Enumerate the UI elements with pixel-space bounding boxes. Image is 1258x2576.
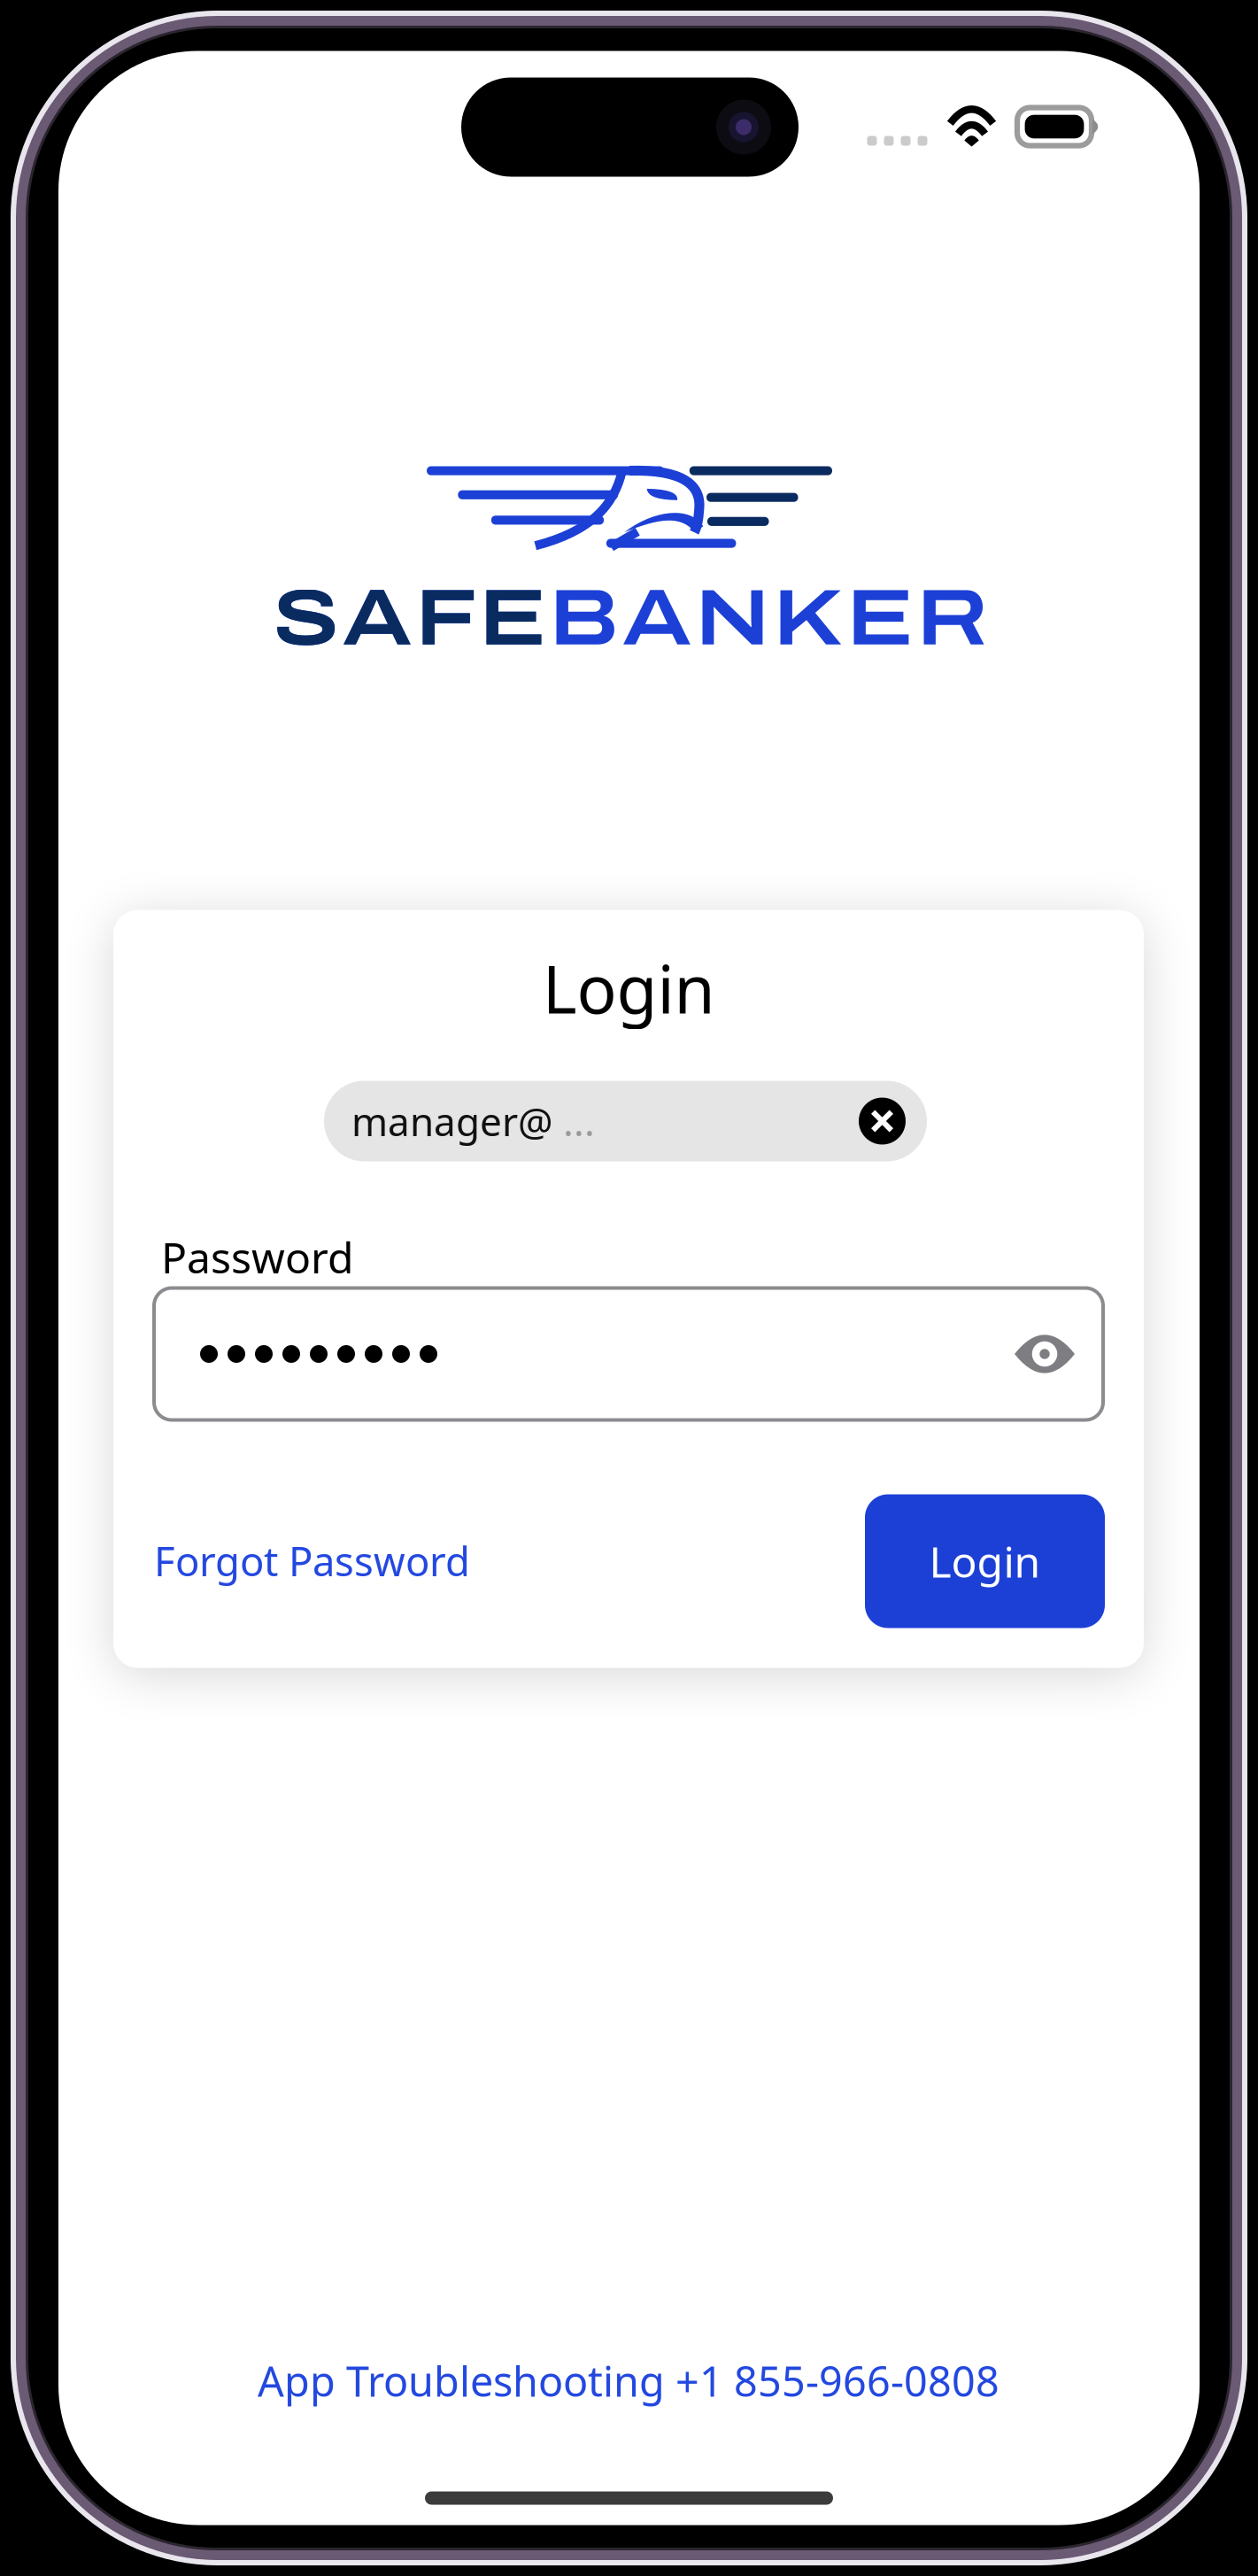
staticText: SAFEBANKER [273,576,988,661]
button[interactable]: Forgot Password [154,1534,473,1587]
button[interactable]: App Troubleshooting +1 855-966-0808 [248,2350,1009,2412]
staticText: Forgot Password [154,1534,470,1587]
staticText: App Troubleshooting +1 855-966-0808 [258,2353,999,2408]
staticText: Login [929,1533,1041,1589]
staticText: Password [161,1229,354,1285]
staticText: manager@ [351,1095,563,1147]
staticText: SAFEBANKER [273,576,988,661]
staticText: ... [563,1095,595,1147]
staticText: Login [542,944,715,1032]
button[interactable]: Show password [1000,1310,1089,1398]
button[interactable]: Login [865,1494,1105,1628]
